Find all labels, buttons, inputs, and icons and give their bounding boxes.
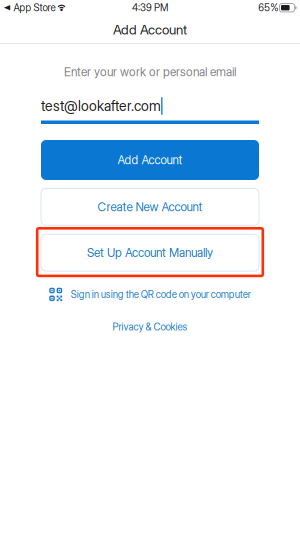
staticText: Privacy & Cookies: [112, 321, 187, 333]
staticText: App Store: [14, 2, 56, 14]
staticText: Enter your work or personal email: [64, 65, 236, 79]
button[interactable]: Create New Account: [41, 188, 259, 225]
staticText: Sign in using the QR code on your comput…: [71, 288, 251, 300]
staticText: Add Account: [113, 22, 187, 38]
staticText: 65%: [258, 2, 278, 14]
button[interactable]: Add Account: [41, 140, 259, 180]
staticText: test@lookafter.com: [41, 97, 161, 114]
staticText: 4:39 PM: [132, 2, 168, 14]
button[interactable]: Sign in using the QR code on your comput…: [49, 287, 251, 301]
button[interactable]: Privacy & Cookies: [112, 321, 187, 333]
button[interactable]: Set Up Account Manually: [37, 228, 263, 276]
staticText: Add Account: [117, 153, 182, 167]
staticText: Create New Account: [97, 200, 202, 214]
staticText: Set Up Account Manually: [87, 246, 213, 260]
